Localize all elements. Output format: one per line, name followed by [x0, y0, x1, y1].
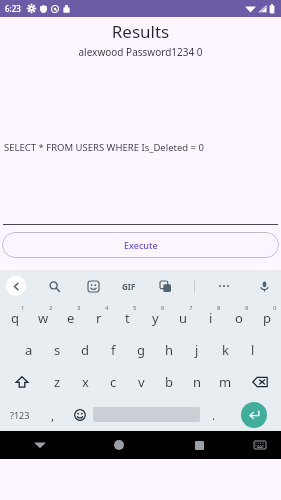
button[interactable]: p [253, 302, 281, 334]
button[interactable]: ?123 [0, 398, 39, 431]
button[interactable]: g [127, 334, 155, 366]
staticText: 4 [105, 304, 109, 312]
staticText: 5 [133, 304, 137, 312]
staticText: k [222, 341, 229, 359]
staticText: 0 [273, 304, 277, 312]
staticText: . [212, 407, 216, 423]
button[interactable]: w [29, 302, 57, 334]
staticText: m [219, 373, 232, 391]
button[interactable]: q [0, 302, 29, 334]
button[interactable]: Back [6, 276, 26, 296]
staticText: u [179, 309, 188, 327]
button[interactable]: a [15, 334, 43, 366]
staticText: 9 [245, 304, 249, 312]
staticText: i [209, 309, 213, 327]
button[interactable]: Enter [227, 398, 281, 431]
button[interactable]: u [169, 302, 197, 334]
button[interactable]: . [200, 398, 227, 431]
staticText: s [54, 341, 61, 359]
staticText: x [82, 373, 89, 391]
button[interactable]: y [141, 302, 169, 334]
button[interactable]: Emoji [66, 398, 93, 431]
button[interactable]: Home [79, 431, 159, 459]
staticText: SELECT * FROM USERS WHERE Is_Deleted = 0 [4, 141, 281, 154]
button[interactable]: i [197, 302, 225, 334]
button[interactable]: Voice input [253, 275, 275, 297]
button[interactable]: , [39, 398, 66, 431]
staticText: l [251, 341, 255, 359]
staticText: 2 [49, 304, 53, 312]
staticText: 1 [21, 304, 25, 312]
staticText: r [96, 309, 102, 327]
staticText: alexwood Password1234 0 [0, 45, 281, 59]
staticText: n [193, 373, 202, 391]
staticText: y [152, 309, 159, 327]
staticText: 7 [189, 304, 193, 312]
staticText: Execute [124, 239, 158, 251]
button[interactable]: h [155, 334, 183, 366]
staticText: 8 [217, 304, 221, 312]
staticText: 3 [77, 304, 81, 312]
staticText: g [137, 341, 145, 359]
button[interactable]: k [211, 334, 239, 366]
staticText: a [25, 341, 33, 359]
button[interactable]: b [155, 366, 183, 398]
staticText: w [38, 309, 49, 327]
staticText: o [235, 309, 243, 327]
button[interactable]: Recent apps [159, 431, 239, 459]
button[interactable]: v [127, 366, 155, 398]
button[interactable]: o [225, 302, 253, 334]
button[interactable]: e [57, 302, 85, 334]
button[interactable]: f [99, 334, 127, 366]
button[interactable]: c [99, 366, 127, 398]
staticText: ?123 [10, 409, 30, 421]
staticText: d [81, 341, 89, 359]
button[interactable]: Backspace [239, 366, 281, 398]
staticText: q [11, 309, 19, 327]
button[interactable]: Hide keyboard [0, 431, 79, 459]
staticText: f [111, 341, 116, 359]
button[interactable]: GIF [122, 275, 136, 297]
staticText: c [110, 373, 117, 391]
staticText: b [165, 373, 173, 391]
button[interactable]: z [43, 366, 71, 398]
button[interactable]: Translate [154, 275, 176, 297]
staticText: h [165, 341, 174, 359]
button[interactable]: Switch keyboard [239, 431, 281, 459]
button[interactable]: d [71, 334, 99, 366]
button[interactable]: s [43, 334, 71, 366]
button[interactable]: Stickers [82, 275, 104, 297]
staticText: Results [0, 20, 281, 43]
staticText: t [125, 309, 130, 327]
button[interactable]: r [85, 302, 113, 334]
staticText: e [67, 309, 75, 327]
button[interactable]: m [211, 366, 239, 398]
staticText: 6 [161, 304, 165, 312]
staticText: z [54, 373, 61, 391]
button[interactable]: Shift [0, 366, 43, 398]
button[interactable]: Search [43, 275, 65, 297]
button[interactable]: More options [213, 275, 235, 297]
button[interactable]: j [183, 334, 211, 366]
button[interactable]: Execute [2, 232, 279, 258]
button[interactable]: l [239, 334, 267, 366]
button[interactable]: n [183, 366, 211, 398]
staticText: GIF [122, 281, 136, 292]
button[interactable]: x [71, 366, 99, 398]
staticText: v [138, 373, 145, 391]
staticText: p [263, 309, 271, 327]
staticText: j [195, 341, 199, 359]
button[interactable]: t [113, 302, 141, 334]
staticText: , [51, 407, 55, 423]
staticText: 6:23 [5, 3, 21, 14]
